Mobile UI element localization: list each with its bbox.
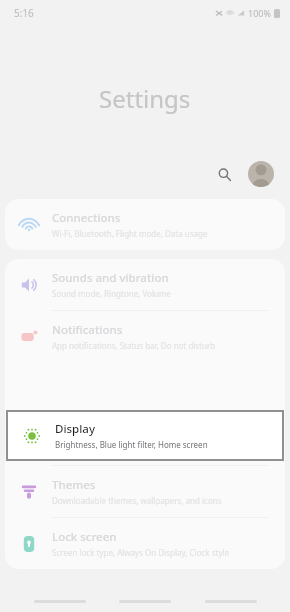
staticText: Wi-Fi, Bluetooth, Flight mode, Data usag…	[52, 228, 208, 239]
staticText: Sound mode, Ringtone, Volume	[52, 288, 171, 299]
button[interactable]: Display	[8, 412, 282, 459]
staticText: 5:16	[14, 6, 34, 20]
button[interactable]: Display	[8, 412, 282, 459]
button[interactable]: Search	[210, 160, 238, 188]
staticText: Connections	[52, 210, 121, 226]
staticText: Notifications	[52, 322, 123, 338]
button[interactable]: Lock screen	[5, 518, 285, 569]
staticText: Brightness, Blue light filter, Home scre…	[55, 439, 208, 450]
staticText: Home screen wallpaper, Lock screen wallp…	[52, 443, 227, 454]
staticText: Settings	[99, 82, 191, 115]
staticText: Screen lock type, Always On Display, Clo…	[52, 547, 230, 558]
button[interactable]: Wallpaper	[5, 414, 285, 465]
button[interactable]: Connections	[5, 199, 285, 250]
staticText: App notifications, Status bar, Do not di…	[52, 340, 216, 351]
button[interactable]: Themes	[5, 466, 285, 517]
staticText: Sounds and vibration	[52, 270, 169, 286]
button[interactable]: Sounds and vibration	[5, 259, 285, 310]
staticText: Lock screen	[52, 529, 117, 545]
staticText: 100%	[248, 7, 271, 19]
staticText: Wallpaper	[52, 425, 108, 441]
staticText: Downloadable themes, wallpapers, and ico…	[52, 495, 222, 506]
staticText: Themes	[52, 477, 96, 493]
staticText: Display	[55, 421, 95, 437]
button[interactable]: Account	[248, 161, 274, 187]
button[interactable]: Notifications	[5, 311, 285, 362]
